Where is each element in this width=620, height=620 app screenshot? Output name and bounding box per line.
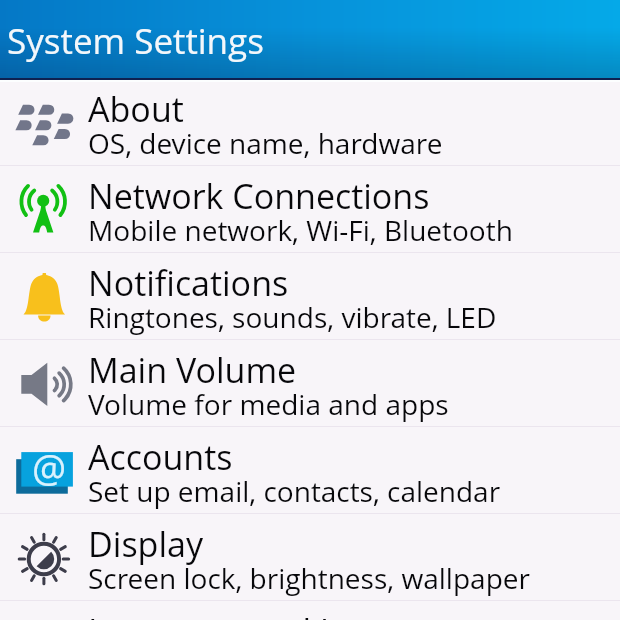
button[interactable]: Language and Input (0, 601, 620, 620)
staticText: @ (32, 442, 67, 494)
staticText: Language and Input (88, 608, 404, 620)
button[interactable]: @ (0, 427, 620, 514)
button[interactable]: Display (0, 514, 620, 601)
staticText: About (88, 86, 184, 132)
staticText: Display (88, 521, 204, 567)
button[interactable]: Main Volume (0, 340, 620, 427)
button[interactable]: About (0, 79, 620, 166)
staticText: System Settings (7, 17, 264, 65)
staticText: Network Connections (88, 173, 430, 219)
staticText: Set up email, contacts, calendar (88, 472, 501, 510)
staticText: OS, device name, hardware (88, 124, 443, 162)
button[interactable]: Network Connections (0, 166, 620, 253)
staticText: Volume for media and apps (88, 385, 449, 423)
staticText: Ringtones, sounds, vibrate, LED (88, 298, 497, 336)
staticText: Mobile network, Wi-Fi, Bluetooth (88, 211, 513, 249)
staticText: Accounts (88, 434, 233, 480)
staticText: Screen lock, brightness, wallpaper (88, 559, 530, 597)
staticText: Main Volume (88, 347, 297, 393)
button[interactable]: Notifications (0, 253, 620, 340)
staticText: Notifications (88, 260, 289, 306)
